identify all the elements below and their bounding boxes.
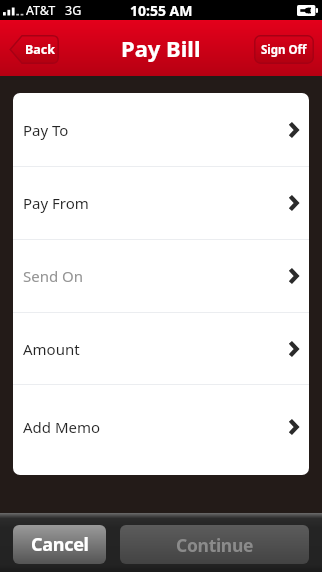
staticText: Pay Bill (121, 33, 201, 63)
staticText: Pay From (23, 193, 89, 213)
button[interactable]: Sign Off (254, 35, 314, 64)
staticText: AT&T (26, 2, 56, 19)
staticText: Pay To (23, 120, 69, 140)
button[interactable]: Send On (13, 240, 309, 312)
staticText: 10:55 AM (130, 1, 193, 20)
staticText: Back (25, 41, 56, 58)
button[interactable]: Add Memo (13, 385, 309, 469)
button[interactable]: Back (9, 35, 59, 64)
staticText: 3G (65, 2, 82, 19)
button[interactable]: Amount (13, 313, 309, 384)
staticText: Cancel (31, 532, 89, 557)
button[interactable]: Cancel (13, 525, 106, 564)
staticText: Amount (23, 339, 80, 359)
button[interactable]: Pay From (13, 167, 309, 239)
staticText: Add Memo (23, 417, 101, 437)
staticText: Sign Off (261, 42, 307, 58)
staticText: Continue (176, 533, 254, 557)
button[interactable]: Continue (120, 525, 309, 564)
button[interactable]: Pay To (13, 93, 309, 166)
staticText: Send On (23, 266, 84, 286)
